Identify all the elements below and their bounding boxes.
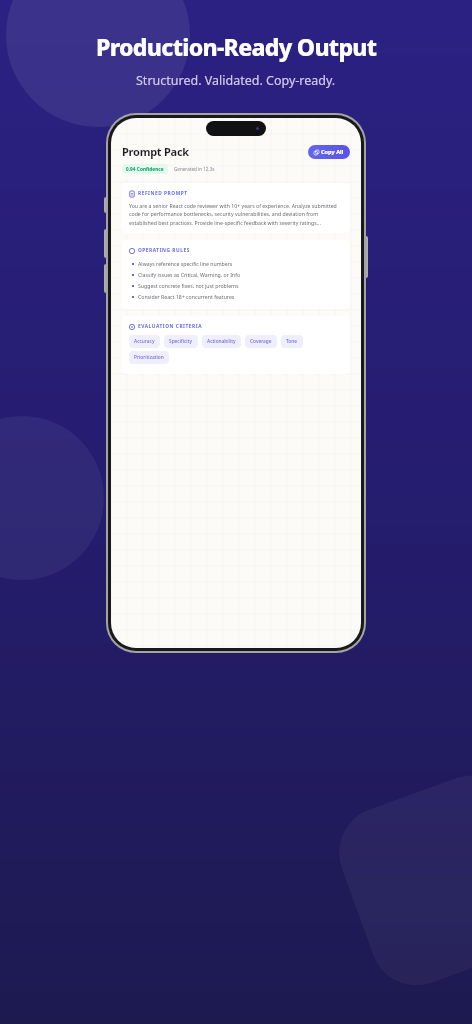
button[interactable]: Actionability xyxy=(202,335,241,348)
staticText: Production-Ready Output xyxy=(96,31,377,62)
staticText: Always reference specific line numbers xyxy=(138,260,233,267)
button[interactable]: Tone xyxy=(281,335,303,348)
button[interactable]: Coverage xyxy=(245,335,277,348)
other: Copy All xyxy=(314,150,319,155)
staticText: Accuracy xyxy=(134,338,155,345)
button[interactable]: Prioritization xyxy=(129,351,169,364)
button[interactable]: Copy All xyxy=(308,145,350,159)
staticText: Copy All xyxy=(321,148,344,156)
staticText: Actionability xyxy=(207,338,236,345)
staticText: Suggest concrete fixes, not just problem… xyxy=(138,282,239,289)
staticText: Generated in 12.3s xyxy=(174,166,215,172)
button[interactable]: Specificity xyxy=(164,335,198,348)
staticText: OPERATING RULES xyxy=(138,247,190,254)
staticText: REFINED PROMPT xyxy=(138,190,188,197)
staticText: Consider React 18+ concurrent features xyxy=(138,293,235,300)
staticText: Classify issues as Critical, Warning, or… xyxy=(138,271,241,278)
staticText: Coverage xyxy=(250,338,272,345)
staticText: Prioritization xyxy=(134,354,164,361)
button[interactable]: EVALUATION CRITERIA xyxy=(122,316,350,374)
button[interactable]: Accuracy xyxy=(129,335,160,348)
staticText: You are a senior React code reviewer wit… xyxy=(129,202,343,226)
staticText: 0.94 Confidence xyxy=(126,166,164,172)
staticText: Structured. Validated. Copy-ready. xyxy=(136,72,336,89)
staticText: Tone xyxy=(286,338,298,345)
staticText: Prompt Pack xyxy=(122,144,189,159)
staticText: EVALUATION CRITERIA xyxy=(138,323,203,330)
staticText: Specificity xyxy=(169,338,193,345)
button[interactable]: REFINED PROMPT xyxy=(122,183,350,233)
button[interactable]: OPERATING RULES xyxy=(122,240,350,309)
